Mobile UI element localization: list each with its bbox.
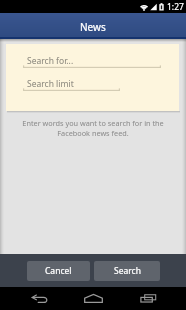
button[interactable]: Search for... <box>23 52 161 69</box>
button[interactable]: Search <box>94 261 160 281</box>
button[interactable]: Cancel <box>27 261 90 281</box>
staticText: 1:27 <box>167 1 184 13</box>
button[interactable]: Home <box>71 287 115 310</box>
staticText: Search limit <box>27 78 74 90</box>
button[interactable]: Back <box>18 287 62 310</box>
staticText: Cancel <box>45 265 72 277</box>
staticText: Enter words you want to search for in th… <box>6 118 180 138</box>
staticText: News <box>80 20 106 34</box>
staticText: Search <box>114 265 141 277</box>
button[interactable]: Search limit <box>23 75 120 92</box>
button[interactable]: Recents <box>126 287 170 310</box>
staticText: Search for... <box>27 55 74 67</box>
